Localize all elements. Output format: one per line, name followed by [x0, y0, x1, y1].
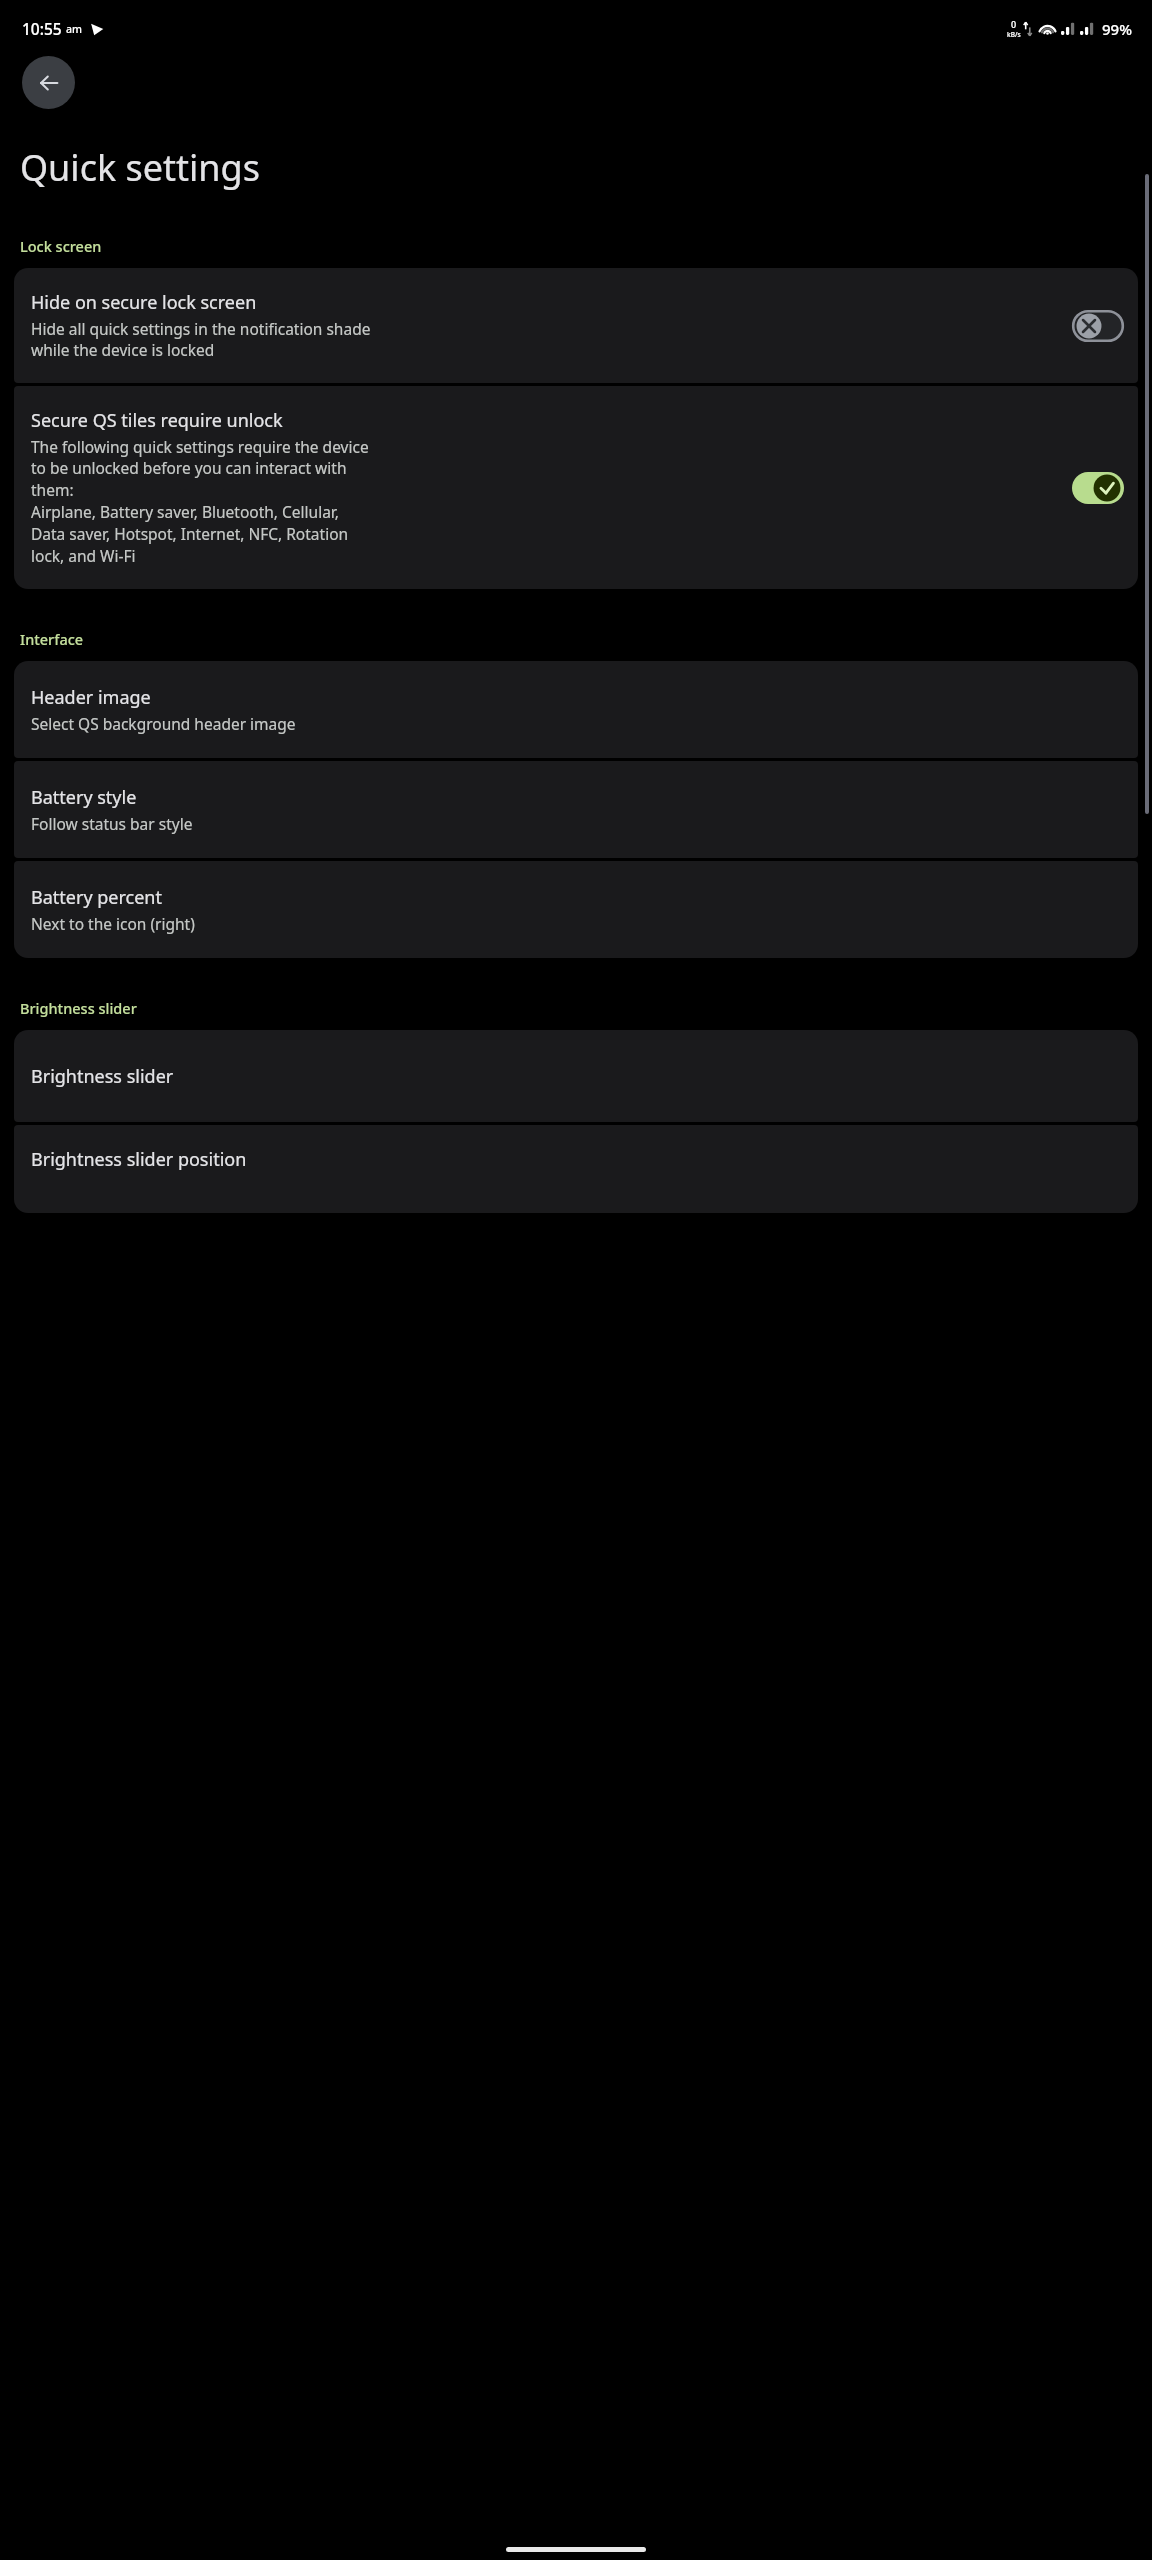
- staticText: Hide all quick settings in the notificat…: [31, 318, 371, 361]
- staticText: Battery style: [31, 785, 137, 810]
- staticText: 0: [1011, 18, 1017, 30]
- staticText: 10:55: [22, 18, 62, 39]
- button[interactable]: Hide on secure lock screen: [14, 268, 1138, 383]
- button[interactable]: Battery style: [14, 761, 1138, 858]
- button[interactable]: Brightness slider: [14, 1030, 1138, 1122]
- button[interactable]: Header image: [14, 661, 1138, 758]
- staticText: 99%: [1102, 19, 1132, 39]
- button[interactable]: Brightness slider position: [14, 1125, 1138, 1213]
- button[interactable]: Back: [22, 56, 75, 109]
- staticText: Battery percent: [31, 885, 162, 910]
- staticText: Hide on secure lock screen: [31, 290, 257, 315]
- staticText: The following quick settings require the…: [31, 436, 369, 567]
- button[interactable]: Battery percent: [14, 861, 1138, 958]
- staticText: Follow status bar style: [31, 813, 193, 834]
- staticText: Secure QS tiles require unlock: [31, 408, 283, 433]
- button[interactable]: Secure QS tiles require unlock toggle, o…: [1072, 472, 1124, 504]
- staticText: Select QS background header image: [31, 713, 296, 734]
- staticText: Next to the icon (right): [31, 913, 195, 934]
- staticText: Lock screen: [20, 236, 102, 256]
- staticText: Brightness slider position: [31, 1147, 247, 1172]
- staticText: Interface: [20, 629, 84, 649]
- button[interactable]: Hide on secure lock screen toggle, off: [1072, 310, 1124, 342]
- staticText: Header image: [31, 685, 151, 710]
- staticText: Brightness slider: [31, 1064, 174, 1089]
- staticText: kB/s: [1007, 30, 1021, 39]
- staticText: am: [66, 22, 82, 36]
- button[interactable]: Secure QS tiles require unlock: [14, 386, 1138, 589]
- staticText: Quick settings: [20, 143, 260, 192]
- staticText: Brightness slider: [20, 998, 137, 1018]
